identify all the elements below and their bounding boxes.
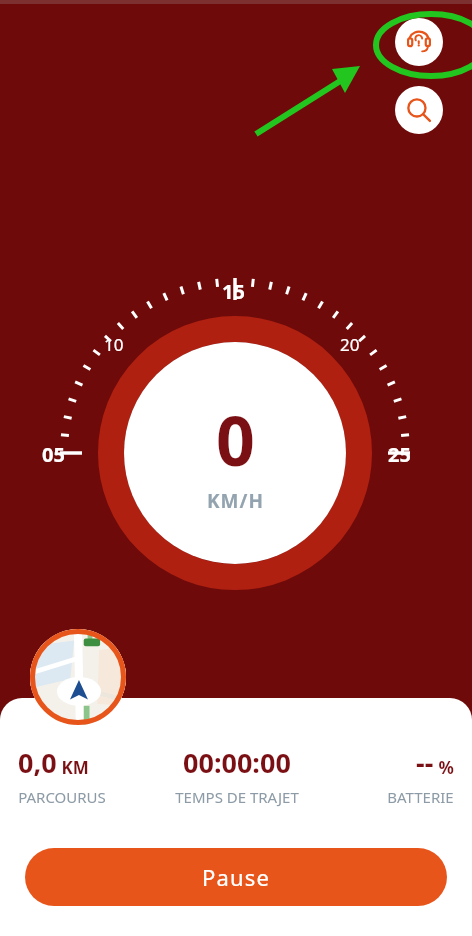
staticText: 05	[42, 441, 65, 468]
staticText: %	[434, 756, 454, 779]
staticText: 20	[340, 333, 360, 356]
button[interactable]: Search	[395, 86, 443, 134]
button[interactable]: Support	[395, 18, 443, 66]
staticText: PARCOURUS	[18, 787, 106, 807]
button[interactable]: Map	[30, 629, 126, 725]
staticText: 15	[222, 278, 245, 305]
staticText: TEMPS DE TRAJET	[175, 787, 299, 807]
staticText: 0	[216, 393, 255, 486]
staticText: KM/H	[207, 488, 264, 514]
staticText: BATTERIE	[387, 787, 454, 807]
button[interactable]: Pause	[25, 848, 447, 906]
staticText: 0,0	[18, 744, 57, 781]
staticText: 00:00:00	[183, 744, 291, 781]
staticText: Pause	[202, 862, 271, 892]
staticText: 10	[104, 333, 124, 356]
staticText: KM	[57, 756, 89, 779]
staticText: 25	[388, 441, 411, 468]
staticText: --	[416, 744, 434, 781]
